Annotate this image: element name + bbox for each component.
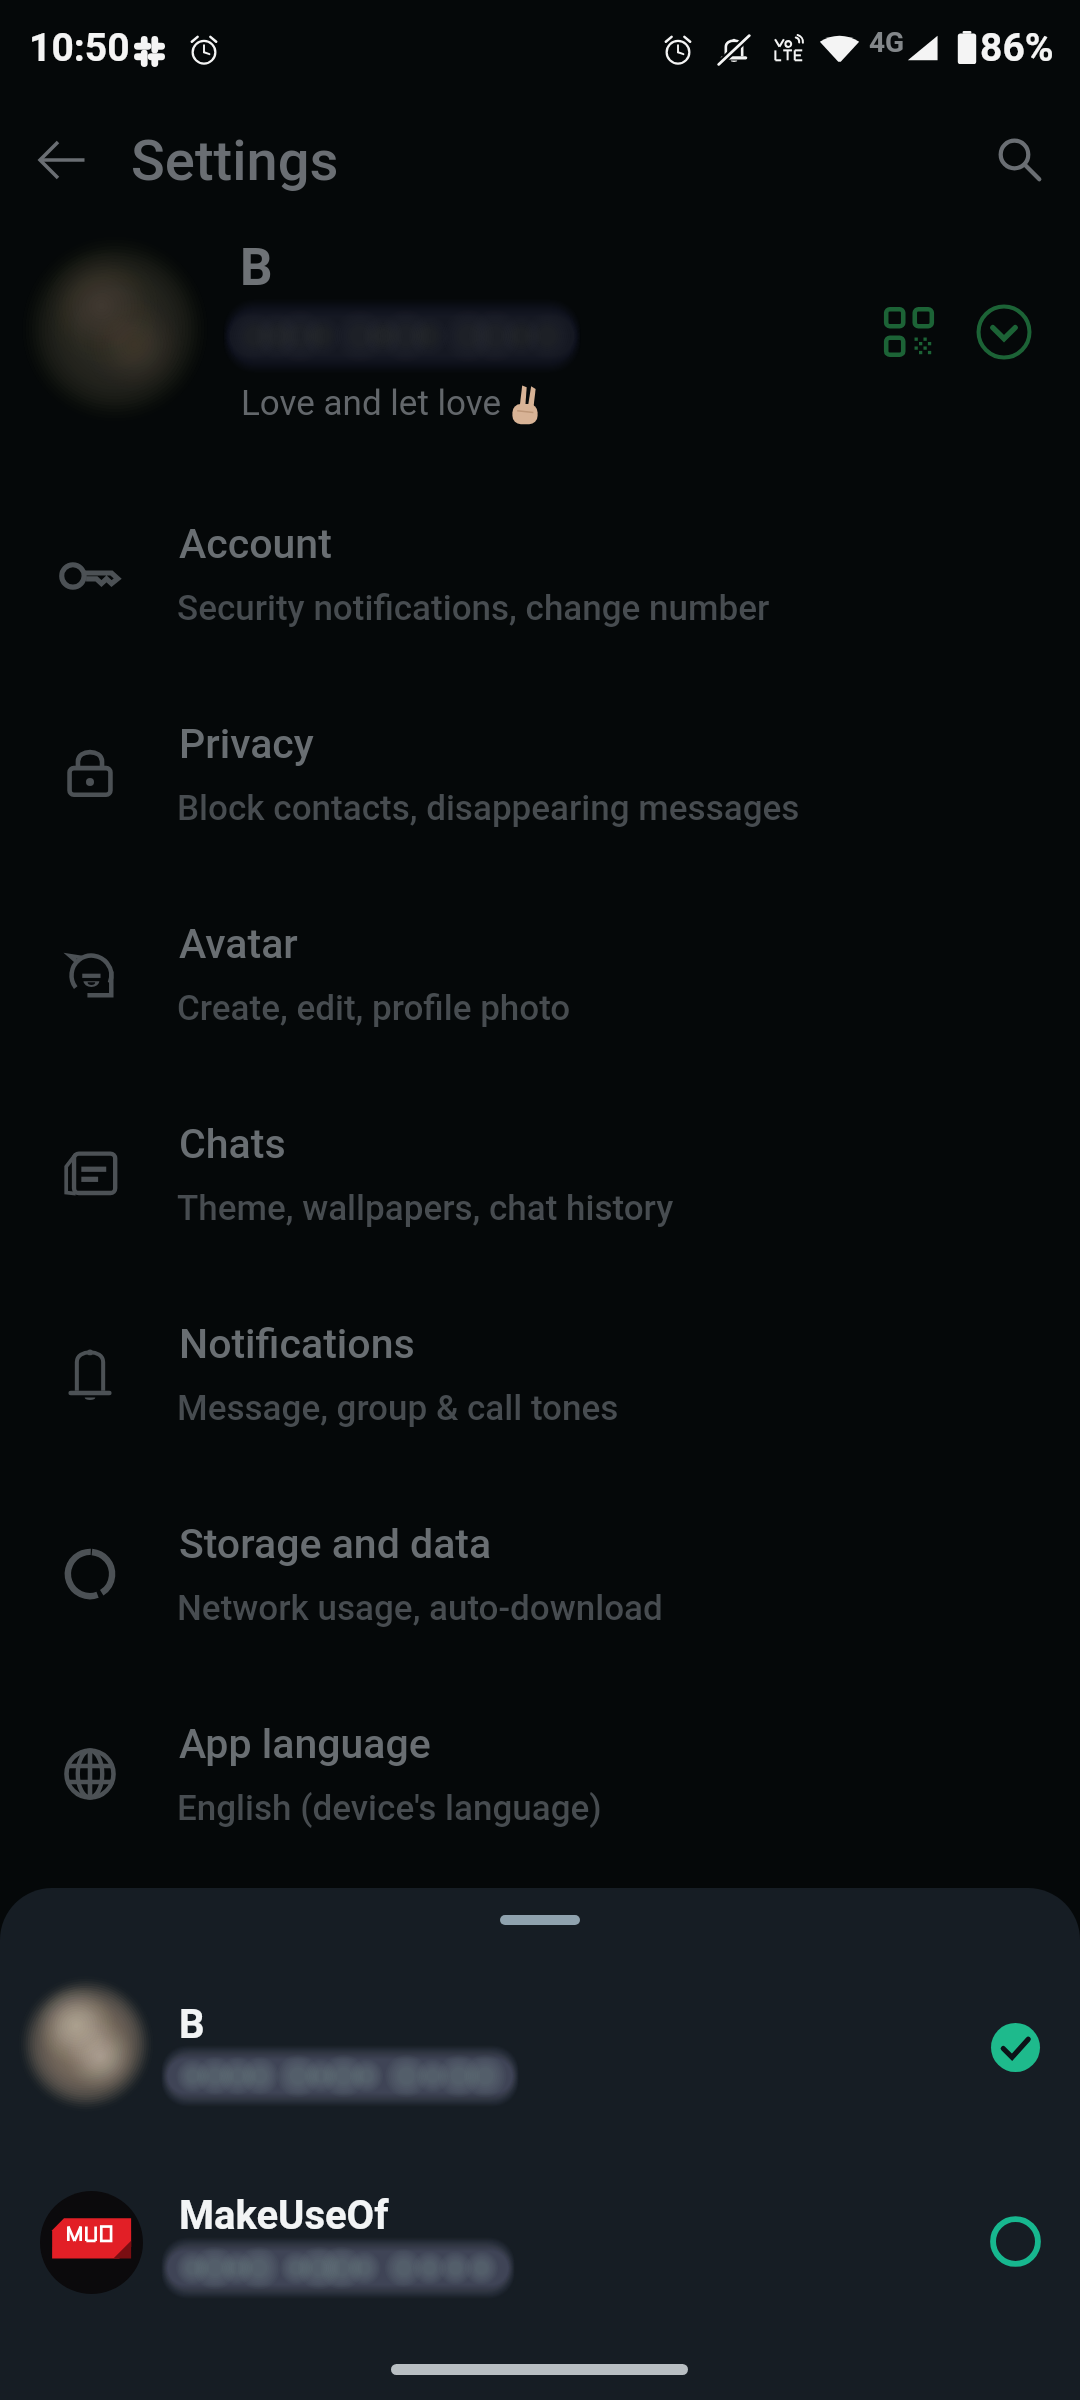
button[interactable]: Chats	[0, 1060, 1080, 1260]
staticText: Message, group & call tones	[177, 1388, 619, 1429]
staticText: Notifications	[179, 1320, 415, 1368]
button[interactable]: B	[0, 210, 1080, 460]
staticText: Chats	[179, 1120, 286, 1168]
button[interactable]: QR code	[864, 287, 954, 377]
button[interactable]: B	[0, 1950, 1080, 2136]
button[interactable]: App language	[0, 1660, 1080, 1860]
staticText: MakeUseOf	[179, 2192, 389, 2239]
button[interactable]: Switch account	[959, 287, 1049, 377]
staticText: Theme, wallpapers, chat history	[177, 1188, 674, 1229]
staticText: English (device's language)	[177, 1788, 602, 1829]
button[interactable]: Avatar	[0, 860, 1080, 1060]
staticText: Settings	[131, 128, 339, 194]
staticText: 86%	[980, 25, 1054, 71]
staticText: Storage and data	[179, 1520, 492, 1568]
staticText: Create, edit, profile photo	[177, 988, 571, 1029]
staticText: Love and let love	[241, 383, 502, 424]
button[interactable]: Back	[20, 118, 104, 202]
button[interactable]: Search	[978, 118, 1062, 202]
staticText: Account	[179, 520, 332, 568]
staticText: Block contacts, disappearing messages	[177, 788, 800, 829]
staticText: Privacy	[179, 720, 314, 768]
staticText: 4G	[869, 26, 905, 59]
staticText: 10:50	[29, 25, 130, 71]
button[interactable]: Privacy	[0, 660, 1080, 860]
button[interactable]: Notifications	[0, 1260, 1080, 1460]
staticText: App language	[179, 1720, 431, 1768]
button[interactable]: Storage and data	[0, 1460, 1080, 1660]
button[interactable]: Account	[0, 460, 1080, 660]
staticText: B	[240, 238, 273, 298]
staticText: Network usage, auto-download	[177, 1588, 663, 1629]
staticText: B	[179, 2001, 205, 2048]
staticText: Security notifications, change number	[177, 588, 770, 629]
staticText: Avatar	[179, 920, 298, 968]
button[interactable]: MakeUseOf	[0, 2146, 1080, 2332]
